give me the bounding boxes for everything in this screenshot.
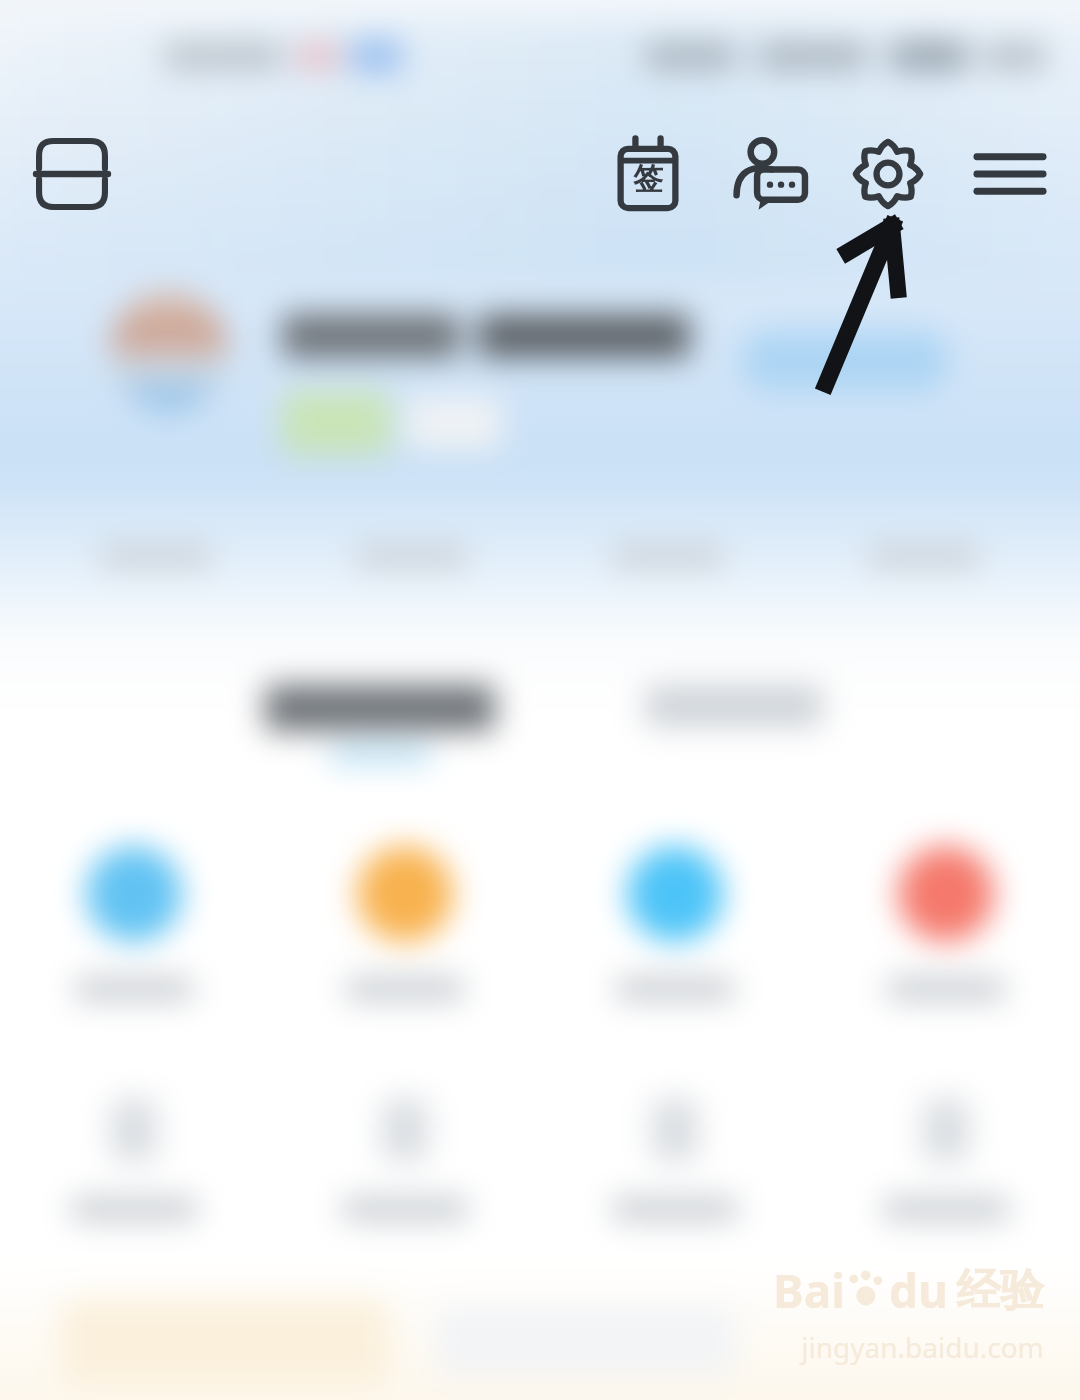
button[interactable] — [595, 846, 755, 1000]
button[interactable]: Check in — [598, 124, 698, 224]
button[interactable] — [54, 1092, 214, 1220]
staticText: 签 — [633, 160, 663, 198]
staticText: jingyan.baidu.com — [801, 1328, 1044, 1366]
button[interactable]: Menu — [960, 124, 1060, 224]
button[interactable] — [325, 846, 485, 1000]
button[interactable] — [866, 1092, 1026, 1220]
button[interactable] — [595, 1092, 755, 1220]
staticText: Bai — [773, 1259, 845, 1322]
staticText: du — [889, 1259, 948, 1322]
button[interactable] — [325, 1092, 485, 1220]
staticText: 经验 — [956, 1263, 1044, 1318]
button[interactable]: Settings — [838, 124, 938, 224]
button[interactable] — [54, 846, 214, 1000]
button[interactable]: Customer service — [720, 124, 820, 224]
button[interactable] — [866, 846, 1026, 1000]
button[interactable]: Split screen — [22, 124, 122, 224]
